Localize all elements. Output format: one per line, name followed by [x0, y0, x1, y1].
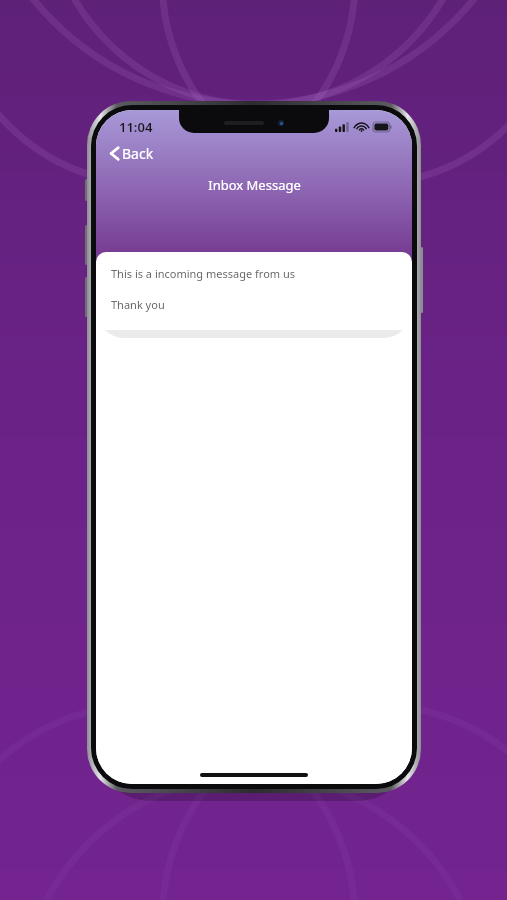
other: Home indicator — [200, 773, 308, 777]
staticText: Thank you — [111, 297, 165, 312]
staticText: Back — [122, 144, 154, 163]
staticText: Inbox Message — [208, 176, 301, 194]
button[interactable]: This is a incoming message from us — [96, 252, 412, 330]
button[interactable]: Back — [96, 140, 166, 171]
staticText: 11:04 — [119, 118, 153, 136]
staticText: This is a incoming message from us — [111, 266, 295, 281]
